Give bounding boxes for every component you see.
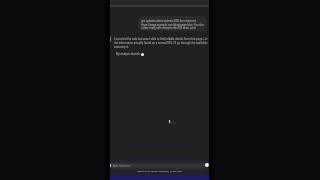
button[interactable]: get updates about website URL from inter…	[138, 16, 207, 31]
staticText: Ask Gemini	[113, 164, 130, 168]
staticText: Gemini can make mistakes, check info	[137, 169, 182, 172]
other: Send	[205, 163, 209, 167]
other: Add attachment	[110, 164, 111, 168]
button[interactable]: Add attachment	[110, 158, 209, 170]
staticText: I searched the web but wasn't able to fi…	[114, 37, 208, 49]
staticText: get updates about website URL from inter…	[141, 19, 204, 30]
staticText: My analysis describ	[116, 52, 140, 56]
staticText: Ally	[170, 120, 176, 125]
